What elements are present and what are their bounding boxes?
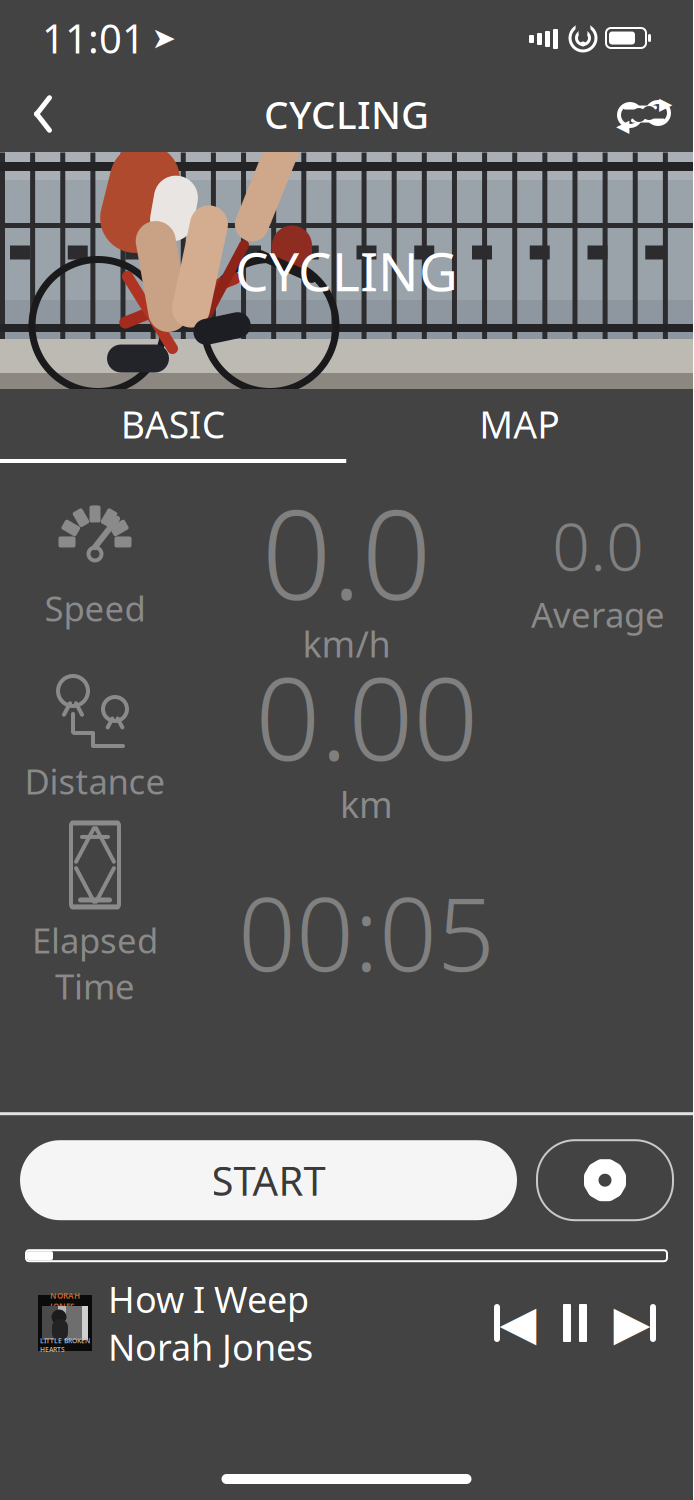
staticText: START xyxy=(211,1154,325,1207)
staticText: CYCLING xyxy=(264,88,429,140)
button[interactable]: Previous track xyxy=(483,1295,543,1351)
staticText: 0.0 xyxy=(552,501,644,589)
button[interactable]: Settings xyxy=(537,1140,673,1220)
staticText: ▸ xyxy=(659,88,672,118)
staticText: 11:01 xyxy=(42,11,145,64)
staticText: ◀ xyxy=(499,1296,536,1350)
button[interactable]: Pause xyxy=(543,1295,607,1351)
staticText: 0.00 xyxy=(255,640,478,792)
staticText: CYCLING xyxy=(235,235,458,306)
button[interactable]: START xyxy=(20,1140,517,1220)
staticText: BASIC xyxy=(121,399,226,449)
staticText: LITTLE BROKEN HEARTS xyxy=(40,1336,90,1354)
staticText: ▶ xyxy=(613,1296,650,1350)
staticText: Norah Jones xyxy=(108,1323,313,1371)
staticText: ◂ xyxy=(616,110,629,140)
staticText: NORAH JONES xyxy=(50,1290,80,1312)
button[interactable]: Next track xyxy=(607,1295,667,1351)
staticText: Speed xyxy=(44,585,145,631)
staticText: 00:05 xyxy=(238,865,495,999)
button[interactable]: Switch activity xyxy=(607,82,681,146)
staticText: MAP xyxy=(479,399,560,449)
staticText: Average xyxy=(531,591,665,637)
staticText: km xyxy=(340,780,393,828)
button[interactable]: MAP xyxy=(346,389,693,459)
staticText: 0.0 xyxy=(261,471,431,633)
staticText: ➤ xyxy=(151,21,176,55)
staticText: Distance xyxy=(24,758,165,804)
staticText: How I Weep xyxy=(108,1275,309,1323)
button[interactable]: Back xyxy=(12,81,74,147)
staticText: Elapsed xyxy=(32,917,158,963)
button[interactable]: BASIC xyxy=(0,389,346,459)
staticText: km/h xyxy=(302,619,390,667)
staticText: Time xyxy=(55,963,135,1009)
